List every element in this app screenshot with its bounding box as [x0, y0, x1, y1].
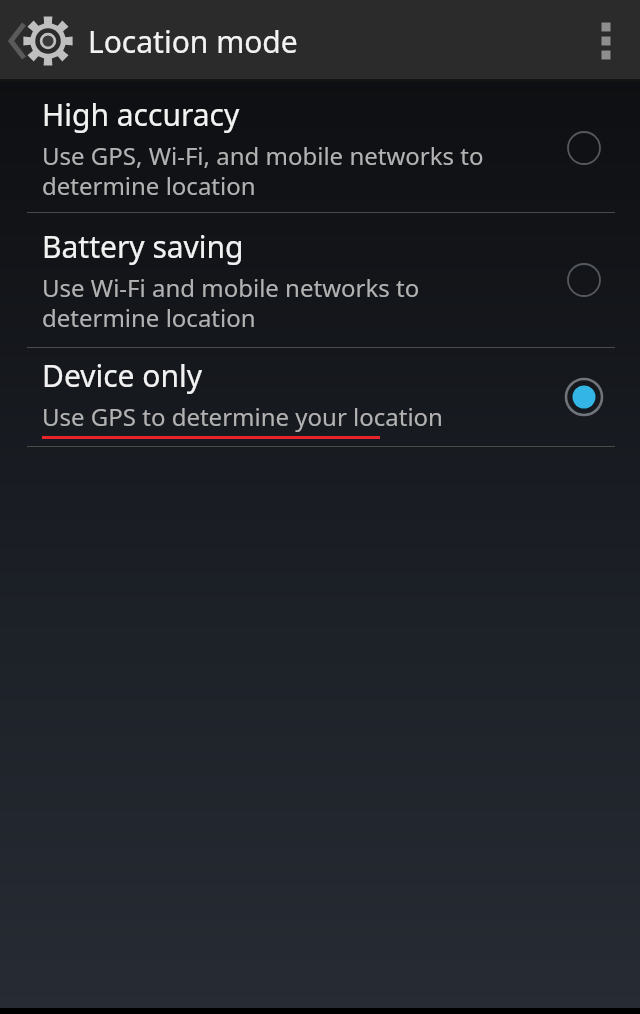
- button[interactable]: Battery saving: [0, 213, 640, 347]
- staticText: High accuracy: [42, 94, 240, 135]
- button[interactable]: Not selected: [528, 83, 640, 212]
- button[interactable]: Not selected: [528, 213, 640, 347]
- staticText: Use Wi-Fi and mobile networks to determi…: [42, 271, 420, 334]
- button[interactable]: More options: [568, 0, 640, 82]
- button[interactable]: Device only: [0, 348, 640, 446]
- button[interactable]: Selected: [528, 348, 640, 446]
- staticText: Device only: [42, 355, 203, 396]
- button[interactable]: High accuracy: [0, 83, 640, 212]
- staticText: Use GPS, Wi-Fi, and mobile networks to d…: [42, 139, 484, 202]
- staticText: Location mode: [88, 21, 298, 62]
- staticText: Battery saving: [42, 226, 244, 267]
- button[interactable]: Navigate up: [0, 0, 84, 82]
- staticText: Use GPS to determine your location: [42, 400, 443, 433]
